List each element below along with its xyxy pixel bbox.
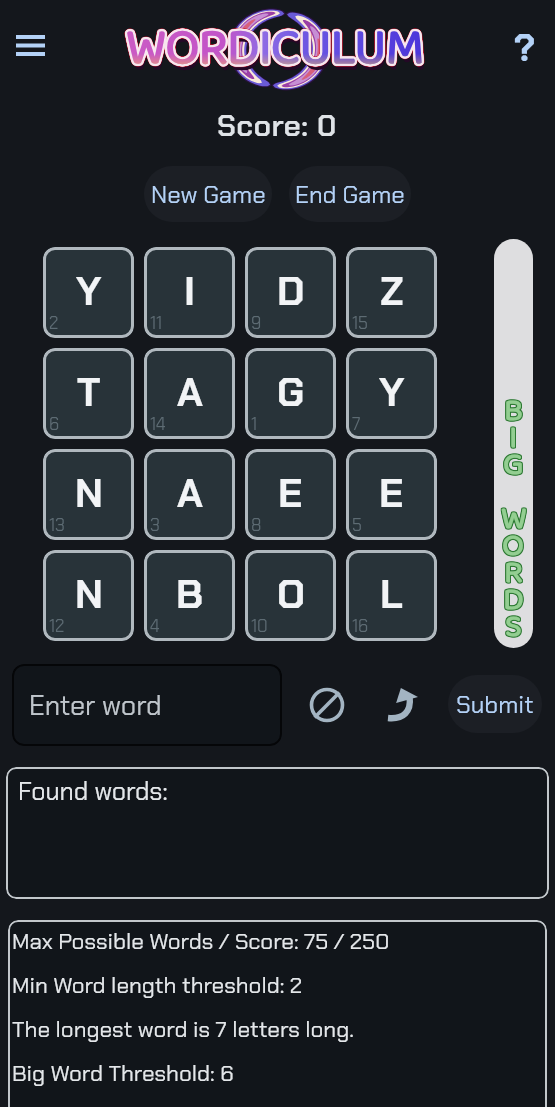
staticText: S	[506, 602, 523, 648]
button[interactable]: B	[144, 550, 235, 641]
staticText: R	[504, 547, 523, 598]
button[interactable]: O	[245, 550, 336, 641]
staticText: WORDICULUM	[127, 7, 425, 87]
staticText: O	[503, 522, 526, 573]
staticText: WORDICULUM	[125, 11, 423, 91]
button[interactable]: E	[346, 449, 437, 540]
staticText: Found words:	[18, 775, 168, 807]
staticText: B	[504, 387, 524, 438]
staticText: W	[501, 493, 527, 544]
staticText: A	[177, 366, 203, 418]
staticText: B	[505, 385, 525, 436]
staticText: WORDICULUM	[124, 10, 422, 90]
staticText: S	[506, 601, 523, 648]
staticText: D	[502, 576, 523, 627]
staticText: WORDICULUM	[128, 8, 426, 88]
staticText: WORDICULUM	[125, 7, 423, 87]
staticText: S	[505, 602, 522, 648]
staticText: The longest word is 7 letters long.	[12, 1015, 354, 1044]
staticText: 11	[150, 312, 163, 334]
staticText: WORDICULUM	[126, 9, 424, 89]
staticText: Y	[379, 366, 405, 418]
staticText: E	[379, 467, 404, 519]
staticText: WORDICULUM	[129, 9, 427, 89]
staticText: D	[502, 575, 523, 626]
staticText: B	[505, 386, 525, 437]
button[interactable]: Help	[503, 23, 547, 67]
staticText: R	[503, 548, 522, 599]
staticText: S	[505, 603, 522, 648]
staticText: WORDICULUM	[128, 7, 426, 87]
staticText: O	[277, 568, 305, 620]
staticText: W	[502, 494, 528, 545]
staticText: D	[504, 576, 525, 627]
staticText: R	[505, 548, 524, 599]
staticText: WORDICULUM	[124, 9, 422, 89]
button[interactable]: A	[144, 449, 235, 540]
staticText: D	[504, 574, 525, 625]
staticText: W	[502, 495, 528, 546]
staticText: WORDICULUM	[126, 9, 424, 89]
staticText: WORDICULUM	[125, 7, 423, 87]
staticText: I	[508, 412, 517, 463]
staticText: WORDICULUM	[128, 10, 426, 90]
staticText: Min Word length threshold: 2	[12, 971, 303, 1000]
staticText: G	[502, 439, 523, 490]
button[interactable]: D	[245, 247, 336, 338]
button[interactable]: Z	[346, 247, 437, 338]
button[interactable]: G	[245, 348, 336, 439]
staticText: R	[505, 547, 524, 598]
staticText: WORDICULUM	[128, 15, 426, 95]
button[interactable]: New Game	[144, 166, 272, 222]
button[interactable]: A	[144, 348, 235, 439]
button[interactable]: N	[43, 550, 134, 641]
staticText: W	[500, 495, 526, 546]
button[interactable]: Y	[346, 348, 437, 439]
button[interactable]: Clear	[303, 681, 351, 729]
button[interactable]: End Game	[289, 166, 411, 222]
staticText: T	[77, 366, 101, 418]
staticText: W	[500, 493, 526, 544]
staticText: D	[502, 574, 523, 625]
button[interactable]: Redo	[379, 679, 427, 727]
staticText: I	[510, 413, 519, 464]
staticText: 15	[352, 312, 368, 334]
staticText: G	[504, 440, 525, 491]
staticText: 8	[251, 514, 262, 536]
staticText: New Game	[151, 179, 266, 210]
staticText: WORDICULUM	[127, 11, 425, 91]
button[interactable]: I	[144, 247, 235, 338]
button[interactable]: N	[43, 449, 134, 540]
staticText: I	[509, 412, 518, 463]
button[interactable]: Menu	[8, 23, 52, 67]
staticText: WORDICULUM	[124, 7, 422, 87]
staticText: G	[277, 366, 305, 418]
staticText: R	[505, 549, 524, 600]
staticText: WORDICULUM	[128, 9, 426, 89]
staticText: I	[184, 265, 196, 317]
staticText: 13	[49, 514, 65, 536]
staticText: B	[505, 387, 525, 438]
staticText: WORDICULUM	[126, 6, 424, 86]
staticText: 2	[49, 312, 59, 334]
staticText: O	[503, 521, 526, 572]
staticText: WORDICULUM	[124, 10, 422, 90]
button[interactable]: E	[245, 449, 336, 540]
staticText: D	[503, 576, 524, 627]
button[interactable]: Y	[43, 247, 134, 338]
staticText: 10	[251, 615, 268, 637]
staticText: WORDICULUM	[125, 11, 423, 91]
staticText: WORDICULUM	[127, 13, 425, 93]
staticText: S	[505, 601, 522, 648]
staticText: WORDICULUM	[127, 12, 425, 92]
button[interactable]: Enter word	[12, 664, 282, 746]
staticText: Submit	[456, 689, 534, 720]
staticText: I	[510, 414, 519, 465]
staticText: 16	[352, 615, 369, 637]
staticText: 3	[150, 514, 160, 536]
staticText: D	[277, 265, 305, 317]
button[interactable]: Submit	[448, 675, 542, 733]
button[interactable]: T	[43, 348, 134, 439]
button[interactable]: L	[346, 550, 437, 641]
staticText: ?	[514, 23, 536, 67]
